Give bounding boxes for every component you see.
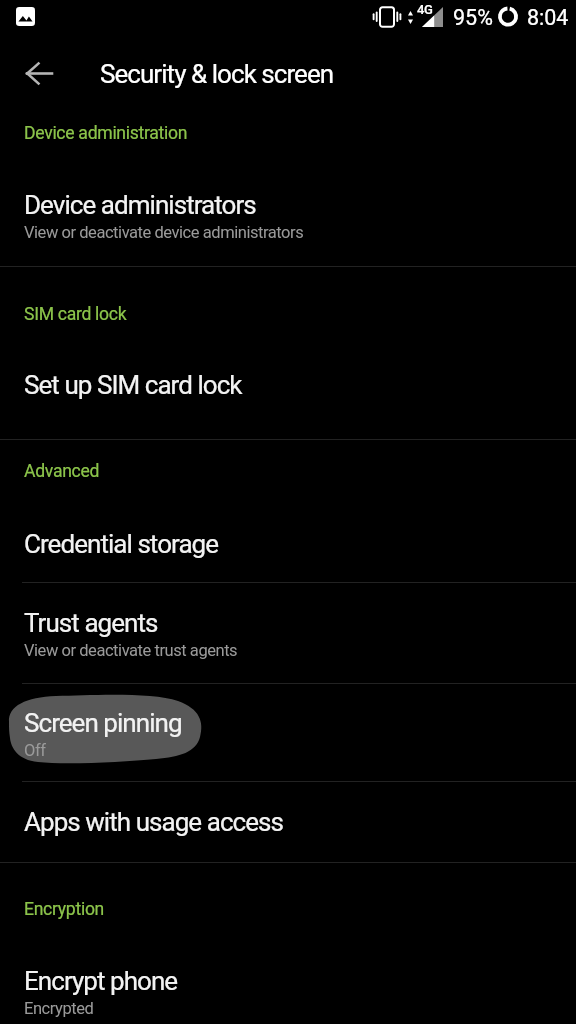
button[interactable]: Credential storage: [0, 508, 576, 582]
staticText: Advanced: [24, 461, 100, 482]
staticText: Apps with usage access: [24, 807, 283, 837]
staticText: Set up SIM card lock: [24, 370, 242, 400]
staticText: Security & lock screen: [100, 59, 334, 89]
button[interactable]: Apps with usage access: [0, 782, 576, 862]
button[interactable]: Screen pinning: [0, 684, 576, 781]
staticText: Encrypted: [24, 999, 94, 1018]
staticText: 4G: [417, 2, 433, 17]
staticText: Device administration: [24, 123, 188, 144]
staticText: View or deactivate trust agents: [24, 641, 238, 660]
staticText: 8:04: [527, 5, 569, 30]
staticText: SIM card lock: [24, 304, 127, 325]
button[interactable]: Encrypt phone: [0, 944, 576, 1024]
staticText: Screen pinning: [24, 708, 182, 738]
staticText: Encryption: [24, 899, 105, 920]
staticText: Off: [24, 741, 46, 760]
staticText: Device administrators: [24, 190, 256, 220]
staticText: Encrypt phone: [24, 966, 178, 996]
button[interactable]: Set up SIM card lock: [0, 348, 576, 439]
button[interactable]: Trust agents: [0, 583, 576, 683]
staticText: 95%: [453, 5, 493, 30]
staticText: View or deactivate device administrators: [24, 223, 304, 242]
staticText: Credential storage: [24, 529, 219, 559]
button[interactable]: Navigate up: [15, 49, 63, 97]
button[interactable]: Device administrators: [0, 166, 576, 266]
staticText: Trust agents: [24, 608, 158, 638]
